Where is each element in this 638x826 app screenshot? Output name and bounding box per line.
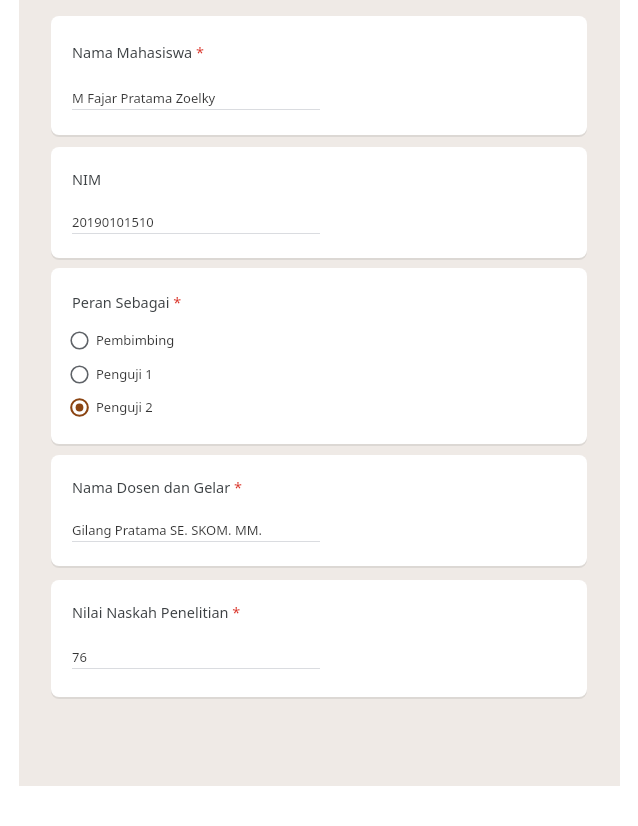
button[interactable]: Nama Dosen dan Gelar * (51, 455, 587, 566)
staticText: Nilai Naskah Penelitian * (72, 602, 241, 622)
button[interactable]: NIM (51, 147, 587, 258)
staticText: Peran Sebagai * (72, 292, 182, 312)
staticText: Nama Mahasiswa * (72, 42, 204, 62)
button[interactable]: Nilai Naskah Penelitian * (51, 580, 587, 697)
staticText: Nama Dosen dan Gelar * (72, 477, 242, 497)
staticText: 20190101510 (72, 213, 154, 231)
staticText: M Fajar Pratama Zoelky (72, 89, 216, 107)
staticText: Penguji 2 (96, 398, 153, 416)
button[interactable]: Penguji 1 (69, 361, 289, 387)
staticText: Pembimbing (96, 331, 175, 349)
button[interactable]: Pembimbing (69, 327, 289, 353)
staticText: Gilang Pratama SE. SKOM. MM. (72, 521, 262, 539)
button[interactable]: Penguji 2 (69, 394, 289, 420)
staticText: NIM (72, 169, 102, 189)
button[interactable]: Nama Mahasiswa * (51, 16, 587, 135)
staticText: 76 (72, 648, 87, 666)
staticText: Penguji 1 (96, 365, 153, 383)
